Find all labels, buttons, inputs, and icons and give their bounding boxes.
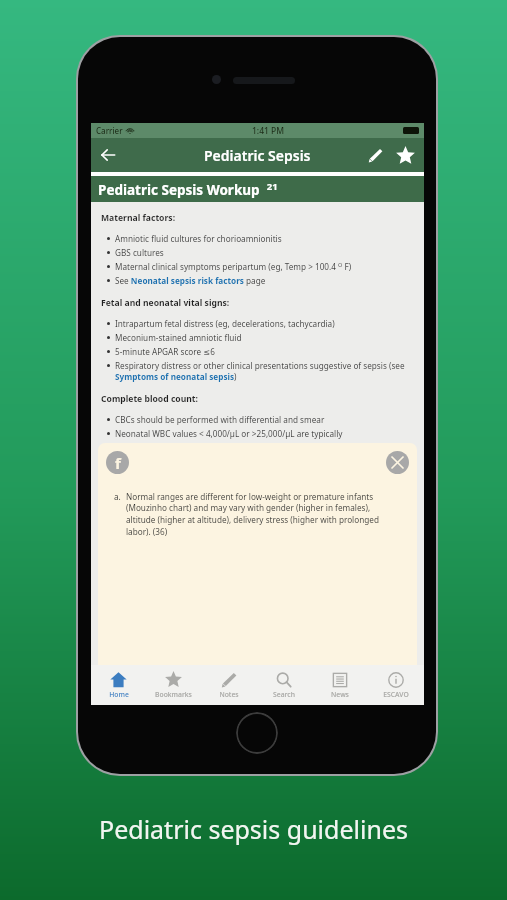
button[interactable]: Footnote xyxy=(106,451,129,474)
staticText: Maternal factors: xyxy=(101,212,176,224)
staticText: a. xyxy=(114,491,121,502)
staticText: Pediatric Sepsis xyxy=(204,146,311,165)
staticText: Fetal and neonatal vital signs: xyxy=(101,297,230,309)
staticText: 1:41 PM xyxy=(252,125,285,137)
staticText: Amniotic fluid cultures for chorioamnion… xyxy=(115,233,282,244)
staticText: Respiratory distress or other clinical p… xyxy=(115,360,416,382)
button[interactable]: Bookmark xyxy=(390,140,420,170)
staticText: Maternal clinical symptoms peripartum (e… xyxy=(115,261,352,272)
staticText: News xyxy=(331,690,349,699)
staticText: Bookmarks xyxy=(155,690,192,699)
staticText: CBCs should be performed with differenti… xyxy=(115,414,325,425)
button[interactable]: Search xyxy=(256,665,312,705)
staticText: Search xyxy=(273,690,295,699)
staticText: Pediatric Sepsis Workup 21 xyxy=(98,180,278,199)
staticText: Meconium-stained amniotic fluid xyxy=(115,332,242,343)
button[interactable]: Home xyxy=(91,665,146,705)
button[interactable]: Notes xyxy=(201,665,256,705)
button[interactable]: ESCAVO xyxy=(368,665,424,705)
staticText: ESCAVO xyxy=(383,690,409,699)
button[interactable]: Edit note xyxy=(360,140,390,170)
staticText: See Neonatal sepsis risk factors page xyxy=(115,275,266,286)
staticText: Notes xyxy=(219,690,239,699)
staticText: Neonatal WBC values < 4,000/µL or >25,00… xyxy=(115,428,343,439)
button[interactable]: News xyxy=(312,665,368,705)
staticText: 5-minute APGAR score ≤6 xyxy=(115,346,215,357)
staticText: GBS cultures xyxy=(115,247,164,258)
button[interactable]: Back xyxy=(91,138,125,172)
button[interactable]: Close xyxy=(386,451,409,474)
staticText: Pediatric sepsis guidelines xyxy=(99,812,408,846)
staticText: Normal ranges are different for low-weig… xyxy=(126,491,395,538)
staticText: Intrapartum fetal distress (eg, decelera… xyxy=(115,318,335,329)
staticText: f xyxy=(115,453,121,473)
staticText: Home xyxy=(109,690,129,699)
staticText: Carrier xyxy=(96,125,123,136)
staticText: Complete blood count: xyxy=(101,393,199,405)
button[interactable]: Bookmarks xyxy=(146,665,201,705)
